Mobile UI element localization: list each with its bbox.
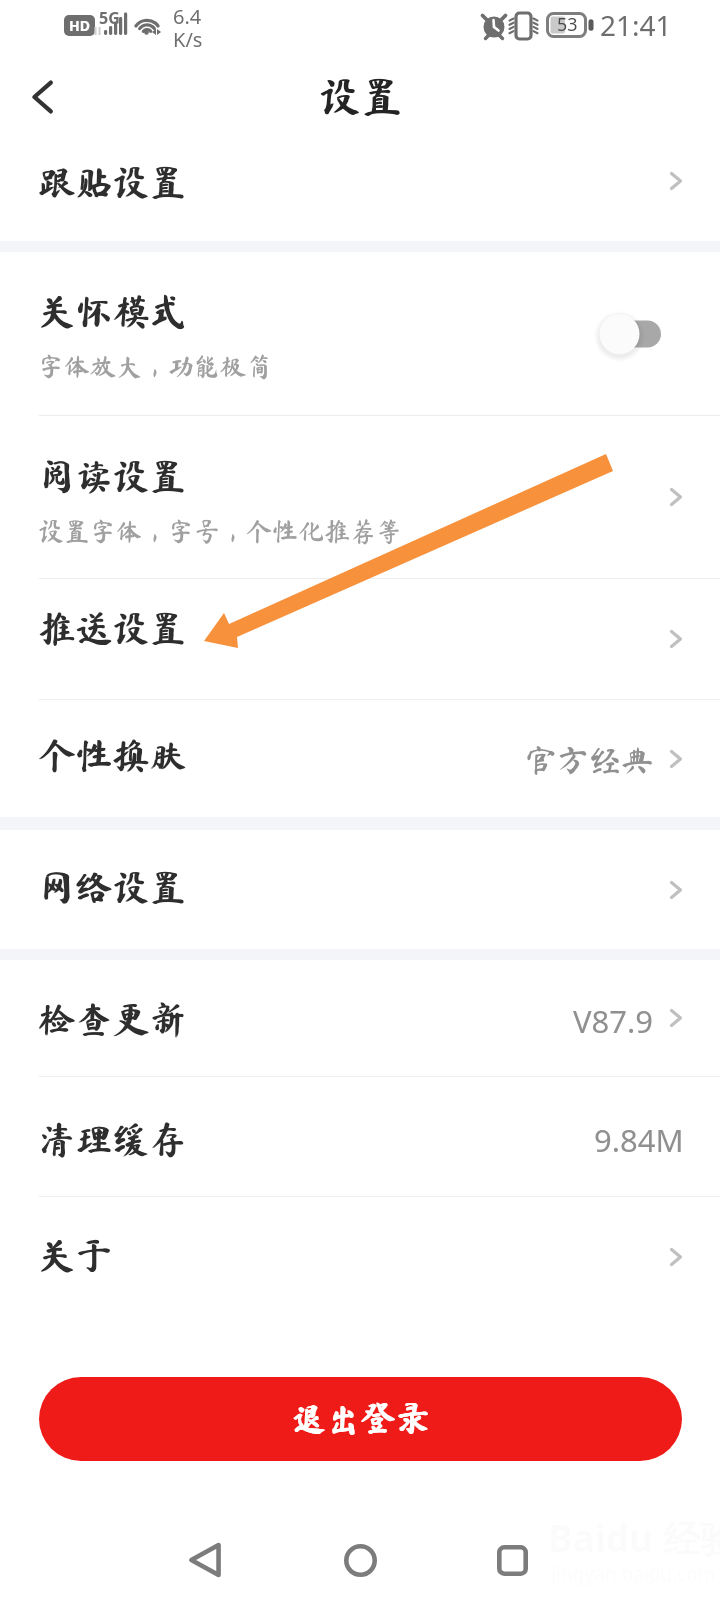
button[interactable]: 跟贴设置 [0, 134, 720, 241]
staticText: 5G [99, 7, 120, 29]
staticText: 个性换肤 [39, 736, 187, 773]
staticText: 字体放大，功能极简 [38, 353, 273, 379]
button[interactable]: 退出登录 [39, 1377, 682, 1461]
button[interactable]: Care mode toggle [573, 307, 661, 361]
staticText: 53 [557, 12, 578, 37]
staticText: 关怀模式 [38, 292, 186, 329]
staticText: K/s [173, 26, 203, 53]
staticText: V87.9 [573, 1000, 654, 1042]
button[interactable]: Recent apps [467, 1520, 557, 1600]
staticText: 设置 [318, 75, 403, 117]
staticText: HD [69, 16, 90, 35]
staticText: 检查更新 [38, 1000, 186, 1037]
staticText: 官方经典 [525, 744, 654, 776]
staticText: 退出登录 [291, 1400, 432, 1435]
staticText: 推送设置 [38, 609, 186, 646]
button[interactable]: Home [315, 1520, 405, 1600]
button[interactable]: Back [162, 1520, 252, 1600]
button[interactable]: 检查更新 [0, 960, 720, 1076]
button[interactable]: Back [8, 60, 82, 134]
staticText: 清理缓存 [38, 1120, 186, 1157]
button[interactable]: 关怀模式 [0, 252, 720, 415]
button[interactable]: 推送设置 [0, 579, 720, 699]
button[interactable]: 网络设置 [0, 830, 720, 949]
staticText: 推送设置 [39, 609, 187, 646]
staticText: 设置字体，字号，个性化推荐等 [38, 518, 403, 544]
staticText: 9.84M [594, 1119, 684, 1161]
staticText: 设置 [319, 75, 404, 117]
staticText: 检查更新 [39, 1000, 187, 1037]
staticText: 关于 [39, 1236, 113, 1273]
staticText: 退出登录 [290, 1400, 431, 1435]
staticText: 跟贴设置 [38, 163, 186, 200]
staticText: 清理缓存 [39, 1120, 187, 1157]
staticText: 关怀模式 [39, 292, 187, 329]
staticText: 阅读设置 [38, 457, 186, 494]
staticText: 个性换肤 [38, 736, 186, 773]
staticText: 阅读设置 [39, 457, 187, 494]
staticText: 网络设置 [39, 868, 187, 905]
button[interactable]: 个性换肤 [0, 700, 720, 817]
staticText: 关于 [38, 1236, 112, 1273]
button[interactable]: 关于 [0, 1197, 720, 1316]
button[interactable]: 清理缓存 [0, 1077, 720, 1196]
staticText: 网络设置 [38, 868, 186, 905]
staticText: 跟贴设置 [39, 163, 187, 200]
staticText: 6.4 [173, 3, 202, 30]
staticText: 21:41 [600, 6, 672, 44]
button[interactable]: 阅读设置 [0, 416, 720, 578]
